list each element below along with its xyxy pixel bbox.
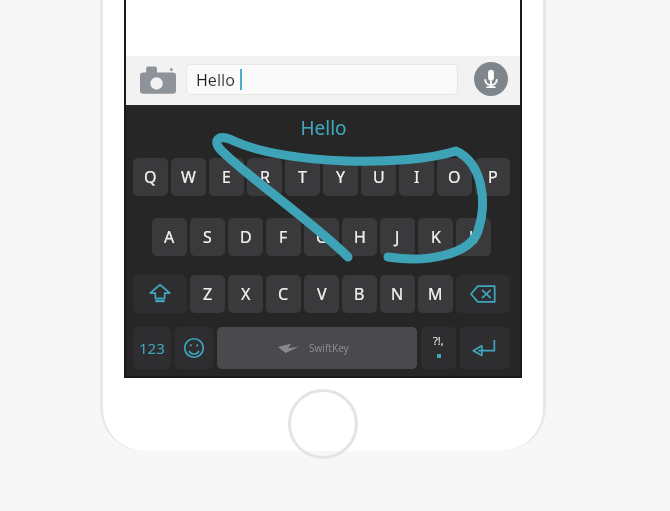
staticText: Hello (300, 115, 347, 141)
button[interactable]: Emoji (175, 327, 213, 369)
staticText: I (414, 166, 420, 188)
button[interactable]: V (304, 275, 339, 313)
button[interactable]: Camera (140, 66, 176, 95)
staticText: N (391, 283, 404, 305)
staticText: ?!, (433, 333, 444, 348)
staticText: V (317, 283, 327, 305)
staticText: O (448, 166, 461, 188)
button[interactable]: E (209, 158, 244, 196)
button[interactable]: Backspace (456, 275, 510, 313)
staticText: A (164, 226, 175, 248)
staticText: S (203, 226, 212, 248)
staticText: T (298, 166, 307, 188)
staticText: M (428, 283, 443, 305)
button[interactable]: Q (133, 158, 168, 196)
button[interactable]: ?!, (421, 327, 456, 369)
staticText: 123 (139, 338, 165, 358)
staticText: R (260, 166, 270, 188)
button[interactable] (133, 275, 187, 313)
button[interactable]: Home (288, 389, 358, 459)
button[interactable]: T (285, 158, 320, 196)
staticText: G (316, 226, 328, 248)
staticText: L (469, 226, 478, 248)
button[interactable]: O (437, 158, 472, 196)
button[interactable]: Z (190, 275, 225, 313)
button[interactable]: C (266, 275, 301, 313)
button[interactable]: N (380, 275, 415, 313)
button[interactable]: A (152, 218, 187, 256)
staticText: W (181, 166, 196, 188)
staticText: Q (144, 166, 157, 188)
staticText: C (278, 283, 289, 305)
button[interactable]: 123 (133, 327, 171, 369)
button[interactable]: J (380, 218, 415, 256)
button[interactable]: H (342, 218, 377, 256)
staticText: U (373, 166, 385, 188)
button[interactable]: U (361, 158, 396, 196)
staticText: Y (336, 166, 346, 188)
button[interactable]: SwiftKey (217, 327, 417, 369)
staticText: F (279, 226, 288, 248)
button[interactable]: W (171, 158, 206, 196)
button[interactable]: Hello (256, 113, 390, 143)
button[interactable]: B (342, 275, 377, 313)
button[interactable]: Y (323, 158, 358, 196)
button[interactable]: Hello (186, 64, 458, 95)
staticText: Hello (196, 69, 235, 91)
button[interactable]: I (399, 158, 434, 196)
staticText: SwiftKey (309, 341, 349, 355)
button[interactable]: L (456, 218, 491, 256)
button[interactable]: Enter (460, 327, 510, 369)
button[interactable]: Voice input (474, 62, 508, 96)
button[interactable]: G (304, 218, 339, 256)
button[interactable]: P (475, 158, 510, 196)
staticText: H (354, 226, 366, 248)
staticText: D (240, 226, 252, 248)
staticText: P (488, 166, 498, 188)
button[interactable]: D (228, 218, 263, 256)
staticText: K (431, 226, 441, 248)
button[interactable]: X (228, 275, 263, 313)
staticText: Z (203, 283, 213, 305)
staticText: E (222, 166, 231, 188)
button[interactable]: F (266, 218, 301, 256)
button[interactable]: S (190, 218, 225, 256)
button[interactable]: R (247, 158, 282, 196)
button[interactable]: M (418, 275, 453, 313)
staticText: B (354, 283, 365, 305)
staticText: J (395, 226, 400, 248)
button[interactable]: K (418, 218, 453, 256)
staticText: X (241, 283, 251, 305)
